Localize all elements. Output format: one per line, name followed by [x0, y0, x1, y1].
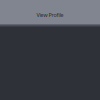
staticText: View Profile [36, 11, 63, 18]
button[interactable]: View Profile [0, 0, 100, 24]
